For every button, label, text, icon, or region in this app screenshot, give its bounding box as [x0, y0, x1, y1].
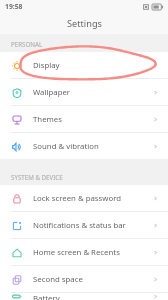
staticText: Themes	[33, 114, 152, 125]
button[interactable]: Sound and vibration	[0, 133, 168, 159]
staticText: Wallpaper	[33, 87, 152, 98]
staticText: Lock screen & password	[33, 193, 152, 204]
other: Wallpaper	[12, 88, 22, 98]
staticText: Settings	[67, 17, 102, 30]
other: Battery	[12, 293, 22, 300]
button[interactable]: Home screen and Recents	[0, 239, 168, 266]
staticText: Display	[33, 60, 152, 71]
other: Notifications and status bar	[12, 221, 22, 231]
staticText: Battery	[33, 293, 152, 300]
staticText: Home screen & Recents	[33, 247, 152, 258]
staticText: Second space	[33, 274, 152, 285]
other: Lock screen and password	[12, 194, 22, 204]
button[interactable]: Themes	[0, 106, 168, 133]
staticText: SYSTEM & DEVICE	[11, 173, 63, 181]
button[interactable]: Notifications and status bar	[0, 212, 168, 239]
button[interactable]: Battery	[0, 293, 168, 300]
staticText: PERSONAL	[11, 40, 43, 48]
staticText: Notifications & status bar	[33, 220, 152, 231]
staticText: Sound & vibration	[33, 141, 152, 152]
other: Sound and vibration	[12, 142, 22, 152]
staticText: 19:58	[5, 2, 23, 11]
other: Display	[12, 61, 22, 71]
button[interactable]: Lock screen and password	[0, 185, 168, 212]
other: Themes	[12, 115, 22, 125]
button[interactable]: Display	[0, 52, 168, 79]
button[interactable]: Wallpaper	[0, 79, 168, 106]
other: Second space	[12, 275, 22, 285]
other: Home screen and Recents	[12, 248, 22, 258]
button[interactable]: Second space	[0, 266, 168, 293]
